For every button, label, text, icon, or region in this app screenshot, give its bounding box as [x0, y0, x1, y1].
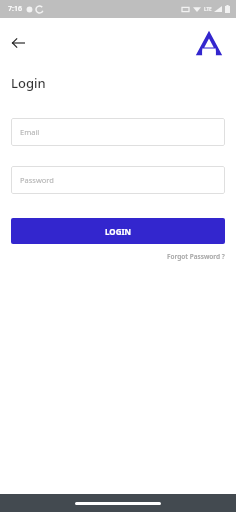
button[interactable]: Back: [4, 29, 32, 57]
button[interactable]: Email: [11, 118, 225, 146]
staticText: Password: [20, 175, 54, 185]
button[interactable]: Logo: [194, 28, 224, 58]
staticText: LOGIN: [105, 226, 132, 237]
staticText: Forgot Password ?: [167, 252, 225, 261]
staticText: 7:16: [8, 4, 22, 14]
staticText: Login: [11, 74, 46, 92]
button[interactable]: LOGIN: [11, 218, 225, 244]
staticText: Email: [20, 127, 40, 137]
staticText: LTE: [204, 6, 212, 12]
button[interactable]: Forgot Password ?: [167, 252, 225, 261]
button[interactable]: Password: [11, 166, 225, 194]
